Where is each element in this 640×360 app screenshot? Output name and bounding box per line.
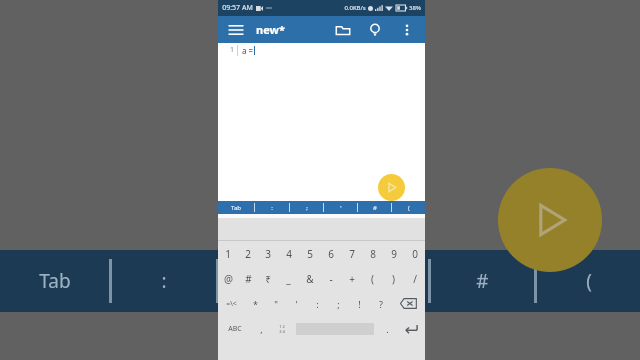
button[interactable]: ? xyxy=(370,291,391,316)
staticText: ( xyxy=(408,204,410,212)
button[interactable]: 1 xyxy=(218,241,238,266)
button[interactable]: 4 xyxy=(278,241,299,266)
button[interactable]: 3 xyxy=(258,241,278,266)
staticText: =\< xyxy=(226,299,237,309)
button[interactable]: @ xyxy=(218,266,238,291)
button[interactable]: 6 xyxy=(320,241,341,266)
staticText: ; xyxy=(306,204,308,212)
button[interactable]: ' xyxy=(286,291,307,316)
staticText: @ xyxy=(224,272,233,286)
staticText: ( xyxy=(586,268,592,294)
button[interactable]: , xyxy=(251,316,271,342)
button[interactable]: Open navigation drawer xyxy=(225,19,247,41)
button[interactable]: * xyxy=(245,291,265,316)
staticText: 1 2 xyxy=(279,324,285,329)
button[interactable]: 8 xyxy=(362,241,383,266)
staticText: ( xyxy=(371,272,374,286)
staticText: ; xyxy=(268,268,274,294)
button[interactable]: ; xyxy=(290,201,323,214)
staticText: a = xyxy=(242,45,254,56)
button[interactable]: Run xyxy=(378,174,405,201)
staticText: 9 xyxy=(391,247,397,261)
staticText: new* xyxy=(256,22,285,37)
staticText: " xyxy=(274,298,278,310)
button[interactable]: 9 xyxy=(383,241,404,266)
button[interactable]: ; xyxy=(328,291,349,316)
button[interactable]: More options xyxy=(396,19,418,41)
staticText: 0 xyxy=(412,247,418,261)
button[interactable]: _ xyxy=(278,266,299,291)
staticText: : xyxy=(161,268,167,294)
button[interactable]: # xyxy=(238,266,258,291)
button[interactable]: : xyxy=(255,201,289,214)
staticText: ; xyxy=(337,298,340,310)
staticText: & xyxy=(306,272,314,286)
staticText: 7 xyxy=(349,247,355,261)
staticText: - xyxy=(329,272,333,286)
staticText: * xyxy=(253,298,258,310)
button[interactable]: & xyxy=(299,266,320,291)
staticText: 3 xyxy=(265,247,271,261)
staticText: 38% xyxy=(409,4,421,12)
button[interactable]: / xyxy=(404,266,425,291)
button[interactable]: " xyxy=(265,291,286,316)
button[interactable]: Backspace xyxy=(391,291,425,316)
button[interactable]: Enter xyxy=(397,316,425,342)
staticText: 8 xyxy=(370,247,376,261)
staticText: 5 xyxy=(307,247,313,261)
button[interactable]: =\< xyxy=(218,291,245,316)
staticText: 09:57 AM xyxy=(222,3,253,13)
button[interactable]: : xyxy=(307,291,328,316)
staticText: # xyxy=(373,204,377,212)
button[interactable]: - xyxy=(320,266,341,291)
staticText: , xyxy=(260,323,263,335)
staticText: # xyxy=(476,268,489,294)
button[interactable]: Tab xyxy=(218,201,254,214)
staticText: ! xyxy=(358,298,361,310)
staticText: 2 xyxy=(245,247,251,261)
button[interactable]: 2 xyxy=(238,241,258,266)
staticText: 6 xyxy=(328,247,334,261)
button[interactable]: ( xyxy=(362,266,383,291)
button[interactable]: 5 xyxy=(299,241,320,266)
button[interactable]: 1 xyxy=(218,43,425,201)
staticText: 1 xyxy=(225,247,231,261)
button[interactable]: ) xyxy=(383,266,404,291)
staticText: ? xyxy=(379,298,383,310)
staticText: ABC xyxy=(228,324,242,334)
staticText: ) xyxy=(392,272,395,286)
staticText: Tab xyxy=(39,268,71,294)
staticText: ' xyxy=(295,298,298,310)
button[interactable]: + xyxy=(341,266,362,291)
button[interactable]: 1 2 xyxy=(271,316,293,342)
staticText: Tab xyxy=(231,204,241,212)
staticText: _ xyxy=(286,272,291,286)
button[interactable]: ₹ xyxy=(258,266,278,291)
button[interactable]: Hints xyxy=(364,19,386,41)
button[interactable]: ( xyxy=(392,201,425,214)
staticText: ₹ xyxy=(265,272,271,286)
staticText: 4 xyxy=(286,247,292,261)
button[interactable]: ' xyxy=(324,201,357,214)
staticText: : xyxy=(316,298,319,310)
button[interactable]: . xyxy=(377,316,397,342)
staticText: 0.0KB/s xyxy=(344,4,366,12)
staticText: : xyxy=(271,204,273,212)
button[interactable]: Open file xyxy=(332,19,354,41)
staticText: + xyxy=(349,272,355,286)
staticText: 1 xyxy=(229,45,234,55)
button[interactable]: 7 xyxy=(341,241,362,266)
staticText: / xyxy=(413,272,417,286)
button[interactable]: ABC xyxy=(218,316,251,342)
staticText: 3 4 xyxy=(279,329,285,334)
button[interactable]: # xyxy=(358,201,391,214)
staticText: . xyxy=(386,323,389,335)
button[interactable]: ! xyxy=(349,291,370,316)
staticText: # xyxy=(245,272,252,286)
staticText: ' xyxy=(340,204,342,212)
button[interactable]: 0 xyxy=(404,241,425,266)
